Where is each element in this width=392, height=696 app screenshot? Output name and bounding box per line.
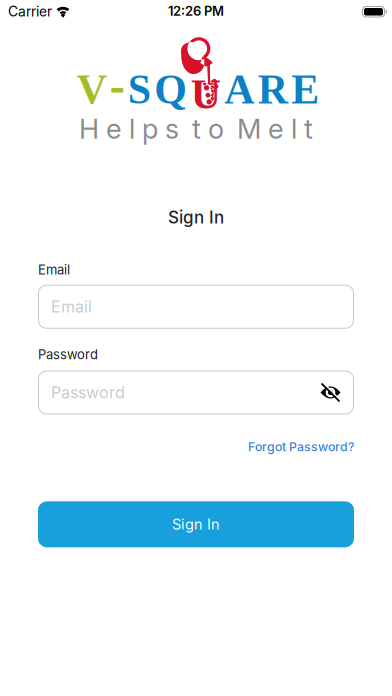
- button[interactable]: Show password: [320, 382, 354, 403]
- staticText: t: [192, 112, 201, 145]
- staticText: M: [237, 112, 261, 145]
- button[interactable]: Password text field: [38, 370, 354, 414]
- staticText: t: [304, 112, 313, 145]
- staticText: p: [142, 112, 158, 145]
- staticText: E: [291, 66, 319, 112]
- staticText: Email: [38, 262, 70, 278]
- staticText: 12:26 PM: [168, 3, 224, 19]
- button[interactable]: Forgot Password?: [248, 439, 354, 454]
- staticText: Sign In: [168, 207, 224, 228]
- staticText: o: [208, 112, 224, 145]
- staticText: l: [291, 112, 297, 145]
- staticText: S: [128, 66, 151, 112]
- staticText: A: [224, 66, 254, 112]
- staticText: Password: [51, 383, 125, 402]
- staticText: Sign In: [172, 516, 220, 533]
- button[interactable]: Sign In: [38, 501, 354, 547]
- staticText: Forgot Password?: [248, 439, 354, 454]
- staticText: s: [165, 112, 179, 145]
- staticText: R: [258, 66, 288, 112]
- staticText: Q: [154, 66, 187, 112]
- staticText: l: [129, 112, 135, 145]
- staticText: e: [106, 112, 122, 145]
- staticText: Password: [38, 347, 98, 362]
- staticText: U: [191, 71, 221, 117]
- staticText: H: [79, 112, 99, 145]
- staticText: Carrier: [8, 3, 52, 20]
- button[interactable]: Email text field: [38, 285, 354, 329]
- staticText: V: [77, 66, 107, 112]
- staticText: e: [268, 112, 284, 145]
- staticText: Email: [51, 297, 92, 316]
